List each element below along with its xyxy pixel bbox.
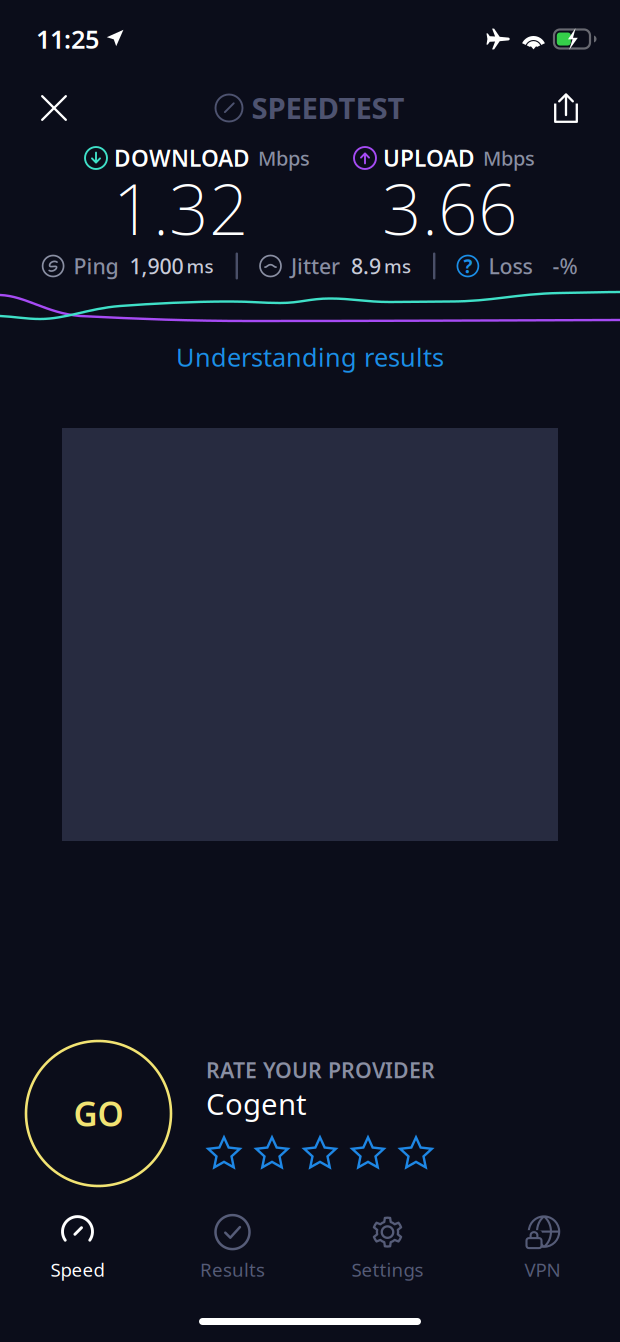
- button[interactable]: GO: [26, 1041, 171, 1186]
- button[interactable]: Results: [155, 1212, 310, 1285]
- staticText: ms: [187, 254, 214, 278]
- button[interactable]: Speed: [0, 1212, 155, 1285]
- staticText: 1,900: [130, 252, 184, 280]
- staticText: DOWNLOAD: [114, 143, 250, 173]
- staticText: Speed: [50, 1257, 104, 1282]
- staticText: Cogent: [206, 1084, 307, 1123]
- staticText: GO: [73, 1091, 123, 1136]
- staticText: Jitter: [291, 252, 340, 280]
- staticText: Mbps: [258, 145, 310, 171]
- staticText: Settings: [351, 1257, 423, 1282]
- staticText: ms: [384, 254, 411, 278]
- staticText: VPN: [524, 1257, 560, 1282]
- staticText: Mbps: [483, 145, 535, 171]
- button[interactable]: VPN: [465, 1212, 620, 1285]
- button[interactable]: Settings: [310, 1212, 465, 1285]
- staticText: Results: [200, 1257, 265, 1282]
- staticText: ?: [463, 254, 472, 278]
- staticText: 11:25: [36, 22, 99, 56]
- staticText: Understanding results: [176, 340, 444, 374]
- staticText: UPLOAD: [383, 143, 475, 173]
- staticText: 3.66: [382, 162, 518, 254]
- staticText: SPEEDTEST: [251, 88, 404, 127]
- staticText: Ping: [74, 252, 119, 280]
- button[interactable]: Share: [540, 82, 592, 134]
- staticText: -%: [552, 252, 577, 280]
- staticText: 8.9: [351, 252, 381, 280]
- button[interactable]: Understanding results: [176, 339, 444, 375]
- staticText: RATE YOUR PROVIDER: [206, 1056, 435, 1084]
- button[interactable]: Close: [28, 82, 80, 134]
- staticText: Loss: [488, 252, 532, 280]
- staticText: 1.32: [113, 162, 249, 254]
